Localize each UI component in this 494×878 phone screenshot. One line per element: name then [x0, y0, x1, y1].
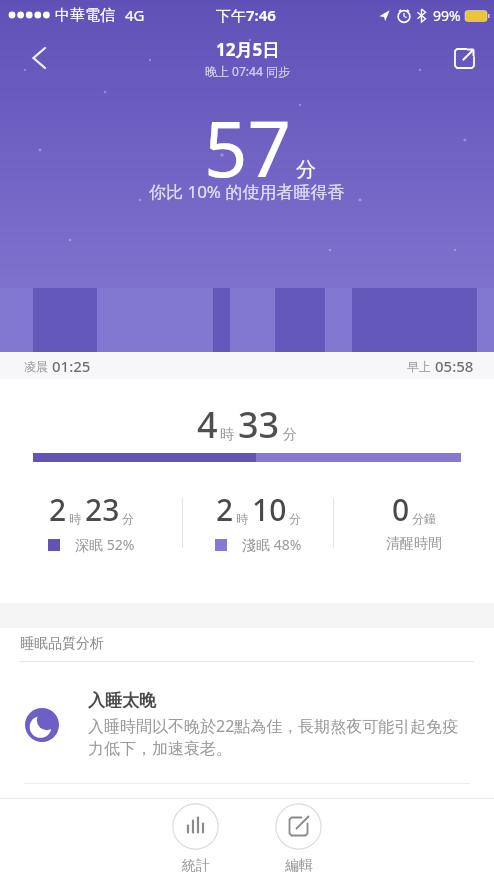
staticText: 分	[296, 157, 316, 182]
staticText: 凌晨	[24, 358, 52, 374]
staticText: 2	[216, 489, 234, 530]
staticText: 早上	[407, 358, 435, 374]
staticText: 你比 10% 的使用者睡得香	[149, 180, 345, 203]
button[interactable]	[446, 40, 482, 76]
staticText: 時	[69, 511, 81, 526]
staticText: 編輯	[285, 857, 313, 875]
button[interactable]: 編輯	[275, 803, 322, 875]
staticText: 57	[204, 96, 291, 200]
staticText: 中華電信	[55, 6, 115, 25]
staticText: 4G	[125, 5, 145, 25]
staticText: 深眠 52%	[75, 535, 135, 554]
staticText: 分	[122, 511, 134, 526]
staticText: 01:25	[52, 356, 91, 376]
staticText: 入睡太晚	[88, 690, 156, 711]
staticText: 05:58	[435, 356, 474, 376]
staticText: 99%	[433, 6, 461, 25]
staticText: 23	[85, 489, 120, 530]
staticText: 下午7:46	[216, 5, 276, 25]
staticText: 統計	[182, 857, 210, 875]
staticText: 33	[238, 400, 280, 449]
staticText: 10	[252, 489, 287, 530]
staticText: 2	[49, 489, 67, 530]
staticText: 清醒時間	[386, 535, 442, 553]
button[interactable]: 統計	[172, 803, 219, 875]
staticText: 分	[289, 511, 301, 526]
staticText: 12月5日	[216, 38, 280, 61]
staticText: 時	[220, 426, 234, 444]
staticText: 4	[197, 400, 218, 449]
staticText: 分鐘	[412, 511, 436, 526]
staticText: 淺眠 48%	[242, 535, 302, 554]
staticText: 時	[236, 511, 248, 526]
staticText: 分	[283, 426, 297, 444]
staticText: 睡眠品質分析	[20, 635, 104, 653]
staticText: 0	[392, 489, 410, 530]
staticText: 晚上 07:44 同步	[205, 63, 290, 79]
staticText: 入睡時間以不晚於22點為佳，長期熬夜可能引起免疫力低下，加速衰老。	[88, 715, 470, 759]
button[interactable]	[20, 40, 56, 76]
